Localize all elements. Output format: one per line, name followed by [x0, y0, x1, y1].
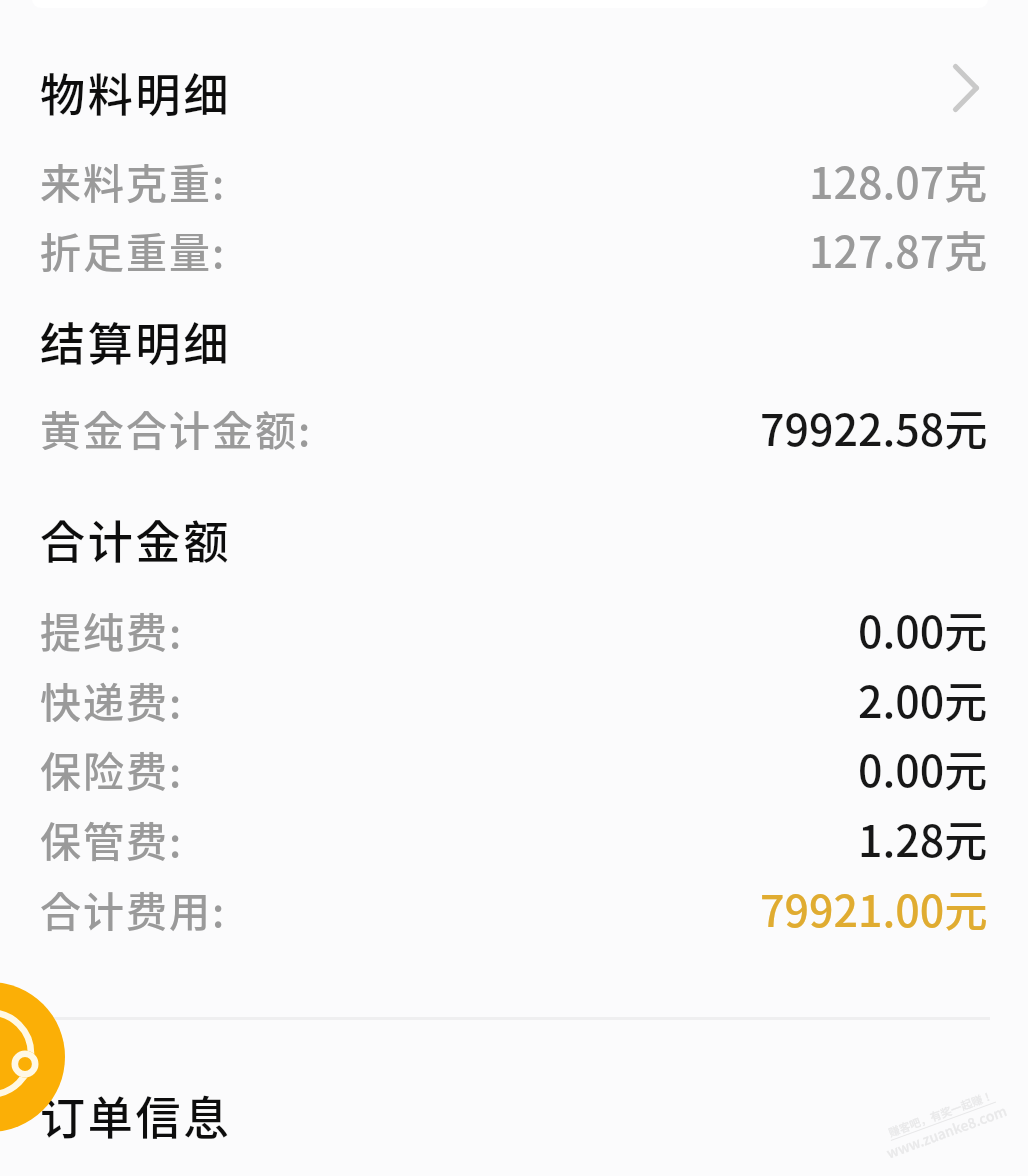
staticText: 合计费用: [40, 879, 212, 938]
staticText: 128.07克: [809, 149, 988, 211]
staticText: 0.00元: [858, 737, 988, 799]
staticText: :: [169, 600, 182, 659]
staticText: 赚客吧，有奖一起赚！: [886, 1087, 995, 1140]
button[interactable]: 保险费: [0, 733, 1028, 803]
staticText: :: [298, 398, 311, 457]
staticText: 物料明细: [40, 60, 232, 125]
staticText: 1.28元: [858, 807, 988, 869]
button[interactable]: 来料克重: [0, 145, 1028, 215]
staticText: 黄金合计金额: [40, 398, 298, 457]
staticText: 2.00元: [858, 668, 988, 730]
staticText: 保险费: [40, 739, 169, 798]
staticText: 保管费: [40, 809, 169, 868]
staticText: :: [212, 151, 225, 210]
button[interactable]: 黄金合计金额: [0, 392, 1028, 462]
staticText: 结算明细: [40, 309, 232, 374]
button[interactable]: 合计费用: [0, 873, 1028, 943]
staticText: :: [169, 739, 182, 798]
staticText: 合计金额: [40, 507, 232, 572]
button[interactable]: 查看物料明细: [941, 52, 991, 124]
staticText: :: [169, 670, 182, 729]
staticText: www.zuanke8.com: [883, 1100, 1010, 1163]
staticText: 来料克重: [40, 151, 212, 210]
staticText: 79921.00元: [760, 877, 988, 939]
staticText: 0.00元: [858, 598, 988, 660]
staticText: 提纯费: [40, 600, 169, 659]
staticText: 127.87克: [809, 218, 988, 280]
button[interactable]: 快递费: [0, 664, 1028, 734]
staticText: 快递费: [40, 670, 169, 729]
staticText: :: [212, 879, 225, 938]
staticText: :: [169, 809, 182, 868]
staticText: :: [212, 220, 225, 279]
button[interactable]: 折足重量: [0, 214, 1028, 284]
button[interactable]: 在线客服: [0, 982, 65, 1132]
button[interactable]: 保管费: [0, 803, 1028, 873]
button[interactable]: 提纯费: [0, 594, 1028, 664]
staticText: 79922.58元: [760, 396, 988, 458]
staticText: 订单信息: [40, 1083, 232, 1148]
button[interactable]: 物料明细: [0, 56, 1028, 128]
staticText: 折足重量: [40, 220, 212, 279]
